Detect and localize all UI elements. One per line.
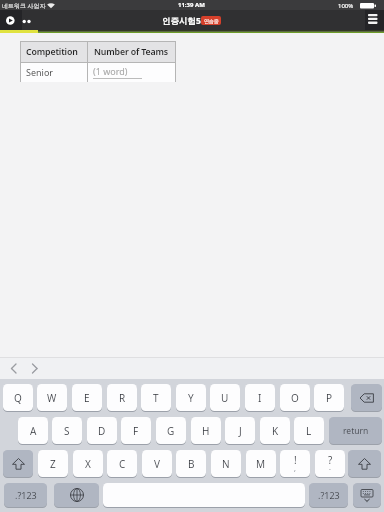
- button[interactable]: L: [294, 417, 324, 444]
- staticText: W: [47, 391, 57, 405]
- staticText: 연습중: [204, 18, 219, 24]
- button[interactable]: [348, 450, 381, 477]
- staticText: 100%: [338, 2, 354, 10]
- button[interactable]: [3, 450, 33, 477]
- staticText: C: [119, 457, 126, 471]
- button[interactable]: Q: [3, 384, 33, 411]
- staticText: T: [153, 391, 159, 405]
- staticText: F: [133, 424, 139, 438]
- button[interactable]: P: [314, 384, 344, 411]
- button[interactable]: return: [329, 417, 382, 444]
- button[interactable]: O: [280, 384, 310, 411]
- button[interactable]: [54, 483, 99, 507]
- staticText: N: [222, 457, 230, 471]
- staticText: S: [64, 424, 70, 438]
- staticText: .: [329, 463, 331, 473]
- button[interactable]: R: [107, 384, 137, 411]
- button[interactable]: E: [72, 384, 102, 411]
- button[interactable]: F: [121, 417, 151, 444]
- staticText: (1 word): [93, 65, 128, 77]
- staticText: Number of Teams: [94, 46, 168, 58]
- button[interactable]: S: [52, 417, 82, 444]
- button[interactable]: H: [191, 417, 221, 444]
- staticText: A: [30, 424, 37, 438]
- button[interactable]: K: [260, 417, 290, 444]
- button[interactable]: W: [37, 384, 67, 411]
- button[interactable]: Z: [38, 450, 68, 477]
- button[interactable]: J: [225, 417, 255, 444]
- staticText: K: [272, 424, 279, 438]
- button[interactable]: B: [176, 450, 206, 477]
- staticText: X: [85, 457, 91, 471]
- button[interactable]: ?: [315, 450, 345, 477]
- button[interactable]: C: [107, 450, 137, 477]
- staticText: B: [188, 457, 195, 471]
- button[interactable]: [353, 483, 381, 507]
- staticText: P: [326, 391, 333, 405]
- staticText: 네트워크 사업자: [2, 2, 46, 10]
- button[interactable]: [26, 359, 44, 378]
- button[interactable]: Y: [176, 384, 206, 411]
- staticText: Y: [188, 391, 194, 405]
- staticText: ,: [294, 464, 296, 474]
- staticText: 인증시험5: [162, 15, 201, 27]
- button[interactable]: !: [280, 450, 310, 477]
- staticText: D: [98, 424, 106, 438]
- button[interactable]: A: [18, 417, 48, 444]
- staticText: return: [343, 425, 369, 437]
- button[interactable]: G: [156, 417, 186, 444]
- staticText: Senior: [26, 66, 54, 78]
- button[interactable]: [0, 10, 22, 30]
- button[interactable]: [4, 359, 22, 378]
- staticText: G: [167, 424, 175, 438]
- staticText: R: [119, 391, 126, 405]
- button[interactable]: .?123: [309, 483, 348, 507]
- button[interactable]: N: [211, 450, 241, 477]
- button[interactable]: [365, 10, 384, 30]
- button[interactable]: (1 word): [92, 63, 144, 80]
- button[interactable]: D: [87, 417, 117, 444]
- button[interactable]: X: [73, 450, 103, 477]
- staticText: ?: [328, 453, 333, 467]
- staticText: U: [221, 391, 229, 405]
- staticText: 11:39 AM: [178, 1, 205, 9]
- button[interactable]: U: [210, 384, 240, 411]
- staticText: O: [291, 391, 299, 405]
- button[interactable]: I: [245, 384, 275, 411]
- staticText: Q: [14, 391, 22, 405]
- button[interactable]: T: [141, 384, 171, 411]
- staticText: J: [239, 424, 242, 438]
- button[interactable]: [103, 483, 305, 507]
- staticText: .?123: [318, 489, 340, 501]
- button[interactable]: M: [246, 450, 276, 477]
- staticText: Z: [50, 457, 56, 471]
- staticText: I: [258, 391, 262, 405]
- button[interactable]: .?123: [4, 483, 47, 507]
- button[interactable]: V: [142, 450, 172, 477]
- staticText: V: [154, 457, 160, 471]
- staticText: M: [256, 457, 266, 471]
- staticText: E: [84, 391, 90, 405]
- staticText: Competition: [26, 46, 78, 58]
- staticText: H: [202, 424, 210, 438]
- staticText: .?123: [15, 489, 37, 501]
- staticText: L: [306, 424, 312, 438]
- button[interactable]: [351, 384, 382, 411]
- staticText: !: [294, 453, 297, 467]
